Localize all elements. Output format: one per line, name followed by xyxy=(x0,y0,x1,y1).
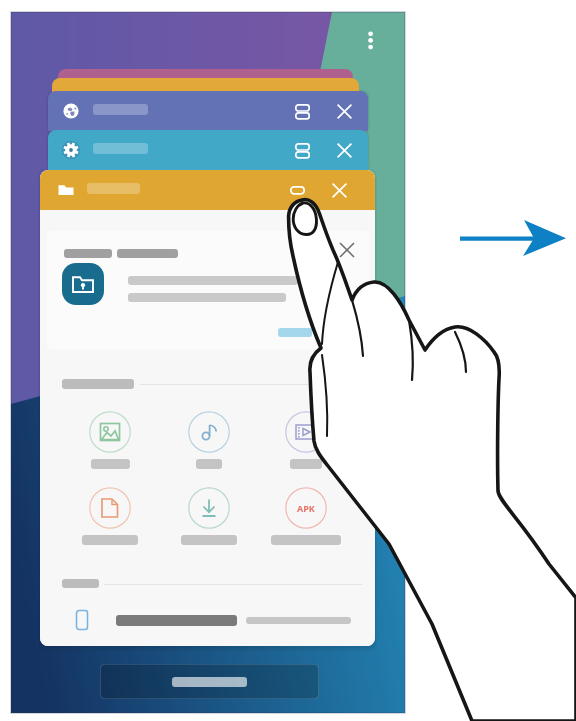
button[interactable]: Open in split screen view xyxy=(290,99,314,123)
button[interactable] xyxy=(266,411,346,469)
button[interactable]: Open in pop-up view xyxy=(285,178,309,202)
button[interactable] xyxy=(40,598,375,644)
other: Next step xyxy=(0,0,576,721)
button[interactable]: Dismiss xyxy=(47,231,369,349)
button[interactable] xyxy=(70,487,150,545)
staticText: APK xyxy=(297,502,315,514)
button[interactable]: Open in split screen view xyxy=(48,130,368,170)
button[interactable]: Close Internet xyxy=(332,99,356,123)
button[interactable] xyxy=(278,328,312,337)
button[interactable]: Close Settings xyxy=(332,138,356,162)
button[interactable] xyxy=(100,664,319,699)
button[interactable] xyxy=(169,487,249,545)
button[interactable]: APK xyxy=(266,487,346,545)
button[interactable]: Close My Files xyxy=(327,178,351,202)
button[interactable]: Open in split screen view xyxy=(290,138,314,162)
button[interactable] xyxy=(169,411,249,469)
button[interactable]: Open in pop-up view xyxy=(40,170,375,210)
button[interactable]: Dismiss xyxy=(332,235,362,265)
button[interactable] xyxy=(70,411,150,469)
button[interactable]: Open in split screen view xyxy=(48,91,368,131)
button[interactable]: More options xyxy=(349,12,393,56)
